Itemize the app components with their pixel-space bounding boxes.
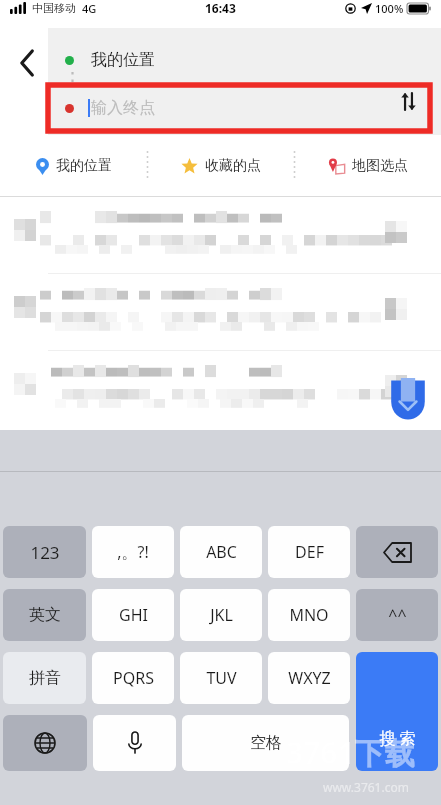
button[interactable]: 输入终点 [48,85,430,131]
staticText: 我的位置 [91,50,155,70]
staticText: ABC [206,541,237,563]
button[interactable] [0,351,441,427]
staticText: 100% [375,1,404,16]
staticText: JKL [210,604,233,626]
staticText: ,。?! [117,541,149,563]
button[interactable] [0,274,441,350]
staticText: 收藏的点 [205,157,261,175]
button[interactable]: GHI [92,589,174,641]
button[interactable] [0,197,441,273]
button[interactable]: MNO [268,589,350,641]
button[interactable]: 英文 [3,589,86,641]
button[interactable]: 我的位置 [0,135,147,197]
staticText: MNO [289,604,329,626]
button[interactable]: Back [6,42,48,84]
staticText: 我的位置 [56,157,112,175]
staticText: 16:43 [205,0,236,16]
staticText: 拼音 [29,668,61,688]
button[interactable]: Backspace [356,526,438,578]
staticText: ^^ [388,604,407,626]
staticText: DEF [295,541,324,563]
staticText: 输入终点 [91,98,155,118]
staticText: 3761下载 [286,732,415,773]
staticText: PQRS [113,667,154,689]
button[interactable]: DEF [268,526,350,578]
button[interactable]: PQRS [92,652,174,704]
button[interactable]: 搜 索 [356,652,438,771]
button[interactable]: 收藏的点 [148,135,294,197]
button[interactable]: 空格 [182,715,349,771]
staticText: WXYZ [288,667,331,689]
button[interactable]: ABC [180,526,262,578]
button[interactable]: Swap origin and destination [394,87,422,115]
staticText: 英文 [29,605,61,625]
staticText: GHI [119,604,148,626]
staticText: 空格 [250,733,282,753]
button[interactable]: ,。?! [92,526,174,578]
staticText: www.3761.com [323,779,409,795]
staticText: 4G [82,1,97,16]
staticText: 搜 索 [379,727,416,749]
button[interactable]: Locate [387,378,429,420]
staticText: 123 [30,541,60,564]
button[interactable]: Switch keyboard [3,715,87,771]
button[interactable]: 123 [3,526,86,578]
button[interactable]: 我的位置 [48,42,438,78]
button[interactable]: Voice input [93,715,176,771]
button[interactable]: 地图选点 [295,135,441,197]
button[interactable]: JKL [180,589,262,641]
button[interactable]: ^^ [356,589,438,641]
staticText: 地图选点 [352,157,408,175]
staticText: 中国移动 [32,1,76,15]
button[interactable]: TUV [180,652,262,704]
button[interactable]: WXYZ [268,652,350,704]
button[interactable]: 拼音 [3,652,86,704]
staticText: TUV [206,667,237,689]
